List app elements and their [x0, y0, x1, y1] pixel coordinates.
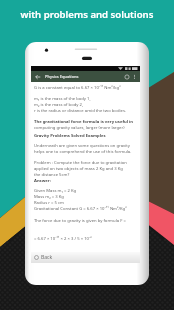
staticText: m₁ is the mass of the body 1,: [34, 96, 91, 102]
button[interactable]: Back: [35, 74, 41, 80]
button[interactable]: More options: [132, 74, 137, 79]
staticText: computing gravity values, larger (more l…: [34, 125, 137, 131]
staticText: Given Mass m₁ = 2 Kg: [34, 188, 77, 194]
staticText: Underneath are given some questions on g…: [34, 143, 137, 149]
staticText: applied on two objects of mass 2 Kg and …: [34, 166, 137, 172]
staticText: Gravity Problems Solved Examples: [34, 133, 106, 139]
staticText: helps one to comprehend the use of this …: [34, 149, 132, 155]
staticText: r is the radius or distance amid the two…: [34, 108, 127, 114]
staticText: The force due to gravity is given by for…: [34, 218, 126, 224]
staticText: Back: [41, 254, 53, 261]
button[interactable]: Refresh: [124, 74, 130, 80]
staticText: Problem : Compute the force due to gravi…: [34, 160, 137, 166]
staticText: with problems and solutions: [0, 8, 174, 21]
staticText: Answer:: [34, 178, 51, 184]
staticText: the distance 5cm?: [34, 172, 70, 178]
staticText: G is a constant equal to 6.67 × 10⁻¹¹ Nm…: [34, 85, 121, 91]
button[interactable]: Back: [31, 252, 140, 263]
staticText: m₂ is the mass of body 2,: [34, 102, 84, 108]
staticText: Mass m₂ = 3 Kg: [34, 194, 64, 200]
staticText: Radius r = 5 cm: [34, 200, 65, 206]
staticText: = 6.67 × 10⁻¹¹ × 2 × 3 / 5 × 10⁻²: [34, 236, 92, 242]
staticText: Gravitational Constant G = 6.67 × 10⁻¹¹ …: [34, 206, 127, 212]
staticText: The gravitational force formula is very …: [34, 119, 134, 125]
staticText: Physics Equations: [45, 74, 79, 79]
button[interactable]: Back: [31, 71, 140, 82]
